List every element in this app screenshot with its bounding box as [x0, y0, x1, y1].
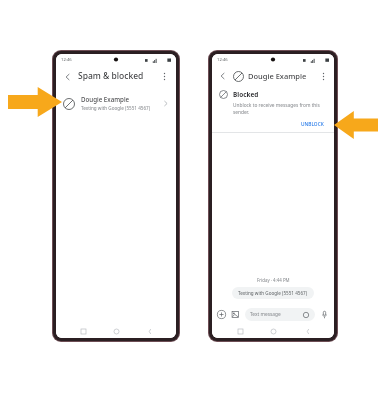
button[interactable]: Home: [267, 325, 279, 337]
staticText: Spam & blocked: [78, 70, 144, 82]
staticText: Dougie Example: [248, 71, 307, 81]
button[interactable]: Dougie Example: [56, 90, 176, 116]
button[interactable]: More options: [158, 70, 171, 83]
button[interactable]: More options: [317, 70, 329, 82]
staticText: UNBLOCK: [301, 121, 324, 128]
other: Pointer to blocked conversation: [8, 87, 62, 117]
staticText: Blocked: [233, 90, 259, 99]
staticText: 12:46: [61, 57, 72, 63]
button[interactable]: Home: [110, 325, 122, 337]
button[interactable]: UNBLOCK: [297, 120, 328, 129]
button[interactable]: Text message: [245, 308, 315, 321]
other: Pointer to Unblock link: [334, 111, 378, 139]
button[interactable]: Back: [61, 70, 74, 83]
other: Emoji: [302, 311, 310, 319]
staticText: Friday · 4:44 PM: [257, 277, 290, 283]
button[interactable]: Gallery: [230, 309, 241, 320]
button[interactable]: Back: [143, 325, 155, 337]
staticText: 12:46: [217, 57, 228, 63]
button[interactable]: Recents: [234, 325, 246, 337]
staticText: Unblock to receive messages from this se…: [233, 102, 328, 116]
button[interactable]: Recents: [77, 325, 89, 337]
button[interactable]: Add attachment: [216, 309, 227, 320]
button[interactable]: Back: [301, 325, 313, 337]
staticText: Texting with Google (5551 4567): [238, 290, 308, 296]
staticText: Dougie Example: [81, 95, 130, 103]
button[interactable]: Back: [217, 70, 229, 82]
staticText: Text message: [250, 311, 281, 318]
button[interactable]: Voice message: [319, 309, 330, 320]
staticText: Texting with Google (5551 4567): [81, 105, 151, 111]
